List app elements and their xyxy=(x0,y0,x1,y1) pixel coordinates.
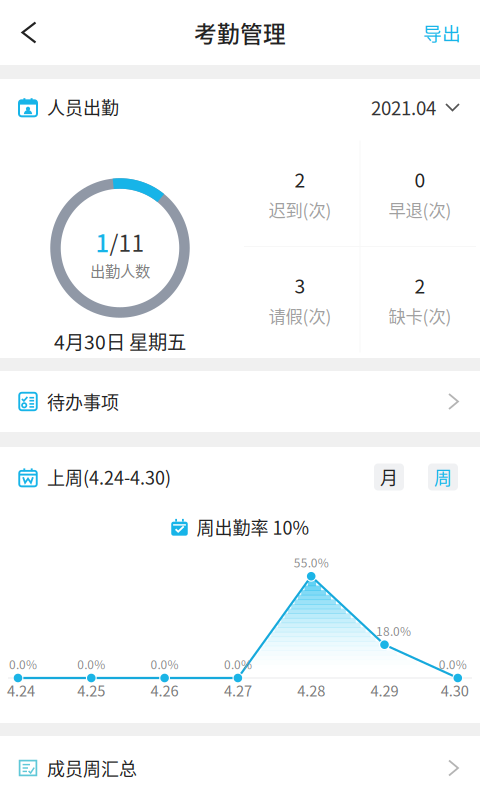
staticText: 月 xyxy=(380,464,398,490)
staticText: 出勤人数 xyxy=(90,259,150,281)
staticText: 考勤管理 xyxy=(194,16,286,49)
staticText: 4.26 xyxy=(151,679,179,701)
staticText: 缺卡(次) xyxy=(388,303,451,328)
staticText: 迟到(次) xyxy=(268,197,331,222)
staticText: 0.0% xyxy=(77,655,105,673)
staticText: 周 xyxy=(434,464,452,490)
button[interactable]: 周 xyxy=(428,463,458,490)
staticText: 人员出勤 xyxy=(47,94,119,120)
button[interactable]: 待办事项 xyxy=(0,371,480,432)
staticText: 18.0% xyxy=(376,622,411,639)
button[interactable]: 月 xyxy=(374,463,404,490)
staticText: 3 xyxy=(294,271,305,299)
staticText: 成员周汇总 xyxy=(47,755,137,781)
staticText: 0.0% xyxy=(151,655,179,673)
staticText: 55.0% xyxy=(294,554,329,571)
staticText: 4.24 xyxy=(7,679,35,701)
staticText: 2 xyxy=(414,271,425,299)
staticText: 上周(4.24-4.30) xyxy=(47,464,171,490)
button[interactable]: 返回 xyxy=(0,5,58,59)
staticText: 0.0% xyxy=(439,655,467,673)
staticText: 0 xyxy=(414,165,425,193)
staticText: 早退(次) xyxy=(388,197,451,222)
staticText: 待办事项 xyxy=(47,388,119,415)
staticText: 0.0% xyxy=(9,655,37,673)
staticText: 1 xyxy=(95,224,109,259)
staticText: 4.28 xyxy=(297,679,325,701)
staticText: 4.27 xyxy=(224,679,252,701)
staticText: 4.30 xyxy=(441,679,469,701)
staticText: 2021.04 xyxy=(371,93,436,120)
staticText: /11 xyxy=(109,225,144,258)
staticText: 请假(次) xyxy=(268,303,331,328)
staticText: 4月30日 星期五 xyxy=(54,327,186,355)
staticText: 4.25 xyxy=(77,679,105,701)
button[interactable]: 成员周汇总 xyxy=(0,736,480,800)
button[interactable]: 导出 xyxy=(404,5,480,59)
staticText: 2 xyxy=(294,165,305,193)
staticText: 4.29 xyxy=(370,679,398,701)
staticText: 0.0% xyxy=(224,655,252,673)
staticText: 导出 xyxy=(423,19,461,46)
staticText: 周出勤率 10% xyxy=(196,514,309,540)
